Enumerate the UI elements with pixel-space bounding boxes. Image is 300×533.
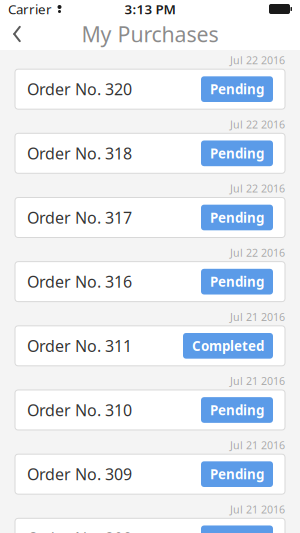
staticText: Jul 22 2016 — [230, 53, 285, 67]
button[interactable]: Jul 21 2016 — [0, 499, 300, 533]
staticText: Completed — [192, 337, 264, 355]
staticText: Jul 22 2016 — [230, 117, 285, 131]
button[interactable]: Jul 21 2016 — [0, 435, 300, 499]
staticText: 3:13 PM — [124, 0, 175, 18]
staticText: Order No. 308 — [27, 528, 132, 533]
staticText: Jul 21 2016 — [230, 374, 285, 388]
staticText: Order No. 310 — [27, 399, 132, 421]
staticText: Pending — [210, 209, 264, 226]
staticText: Pending — [210, 401, 264, 419]
staticText: Jul 22 2016 — [230, 245, 285, 260]
staticText: My Purchases — [81, 20, 218, 48]
staticText: Order No. 309 — [27, 463, 132, 485]
button[interactable]: Jul 22 2016 — [0, 178, 300, 242]
staticText: Order No. 316 — [27, 271, 132, 292]
staticText: Pending — [210, 144, 264, 162]
staticText: Jul 21 2016 — [230, 502, 285, 516]
staticText: Order No. 318 — [27, 143, 132, 164]
button[interactable]: Jul 22 2016 — [0, 50, 300, 114]
button[interactable]: Jul 21 2016 — [0, 371, 300, 435]
button[interactable]: Back — [0, 18, 34, 50]
staticText: Pending — [210, 273, 264, 290]
staticText: Order No. 320 — [27, 78, 132, 100]
button[interactable]: Jul 22 2016 — [0, 114, 300, 178]
staticText: Pending — [210, 465, 264, 483]
staticText: Order No. 317 — [27, 207, 132, 228]
staticText: Jul 21 2016 — [230, 310, 285, 324]
staticText: Jul 22 2016 — [230, 181, 285, 195]
staticText: Carrier — [8, 0, 52, 18]
staticText: Jul 21 2016 — [230, 438, 285, 452]
button[interactable]: Jul 21 2016 — [0, 307, 300, 371]
staticText: Order No. 311 — [27, 335, 132, 356]
staticText: Pending — [210, 80, 264, 98]
button[interactable]: Jul 22 2016 — [0, 242, 300, 307]
